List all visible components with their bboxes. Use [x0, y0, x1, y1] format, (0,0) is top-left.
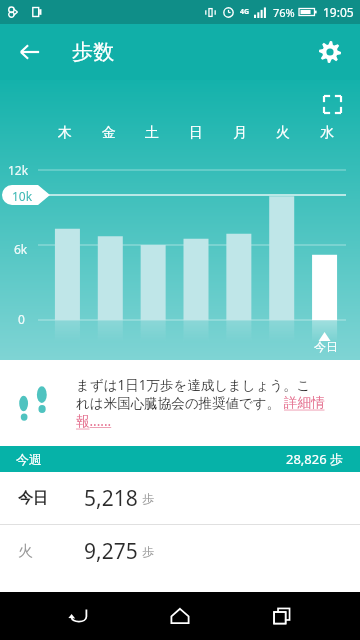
- button[interactable]: 今週: [0, 446, 360, 472]
- staticText: 水: [320, 124, 334, 142]
- button[interactable]: Recent apps: [258, 592, 306, 640]
- staticText: 土: [145, 124, 159, 142]
- staticText: 9,275: [84, 537, 138, 566]
- staticText: 火: [276, 124, 290, 142]
- staticText: 10k: [12, 188, 33, 204]
- staticText: 76%: [273, 5, 295, 20]
- button[interactable]: まずは1日1万歩を達成しましょう。こ: [0, 360, 360, 446]
- button[interactable]: Fullscreen: [314, 86, 350, 122]
- staticText: 今週: [16, 451, 42, 467]
- staticText: 12k: [8, 162, 29, 178]
- staticText: 今日: [314, 339, 338, 354]
- button[interactable]: Settings: [308, 30, 352, 74]
- staticText: 6k: [14, 241, 28, 257]
- staticText: 火: [18, 542, 33, 561]
- staticText: 歩数: [72, 39, 114, 65]
- staticText: まずは1日1万歩を達成しましょう。こ: [76, 376, 311, 394]
- staticText: 日: [189, 124, 203, 142]
- staticText: 月: [233, 124, 247, 142]
- staticText: 19:05: [323, 4, 354, 20]
- staticText: 金: [102, 124, 116, 142]
- staticText: 今日: [18, 489, 48, 508]
- staticText: 0: [18, 311, 25, 327]
- staticText: れは米国心臓協会の推奨値です。: [76, 394, 284, 412]
- button[interactable]: Back: [8, 30, 52, 74]
- staticText: 歩: [142, 544, 154, 559]
- staticText: 歩: [142, 491, 154, 506]
- button[interactable]: Back: [54, 592, 102, 640]
- button[interactable]: 火: [0, 525, 360, 577]
- staticText: 詳細情: [284, 394, 325, 411]
- staticText: 4G: [240, 7, 250, 17]
- button[interactable]: Home: [156, 592, 204, 640]
- staticText: 報......: [76, 412, 112, 430]
- staticText: 木: [58, 124, 72, 142]
- staticText: 28,826 歩: [286, 450, 344, 468]
- button[interactable]: 今日: [0, 472, 360, 524]
- staticText: 5,218: [84, 484, 138, 513]
